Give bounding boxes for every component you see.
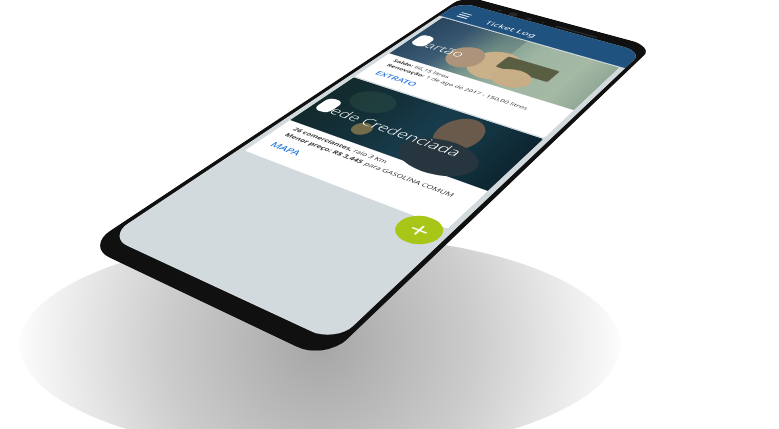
button[interactable]: EXTRATO [373, 69, 421, 88]
staticText: Ticket Log [482, 19, 540, 39]
staticText: Saldo: [391, 58, 418, 69]
staticText: Rede Credenciada [315, 101, 467, 160]
button[interactable]: Add [386, 211, 452, 250]
staticText: 66,15 litros [412, 65, 452, 79]
button[interactable]: Cartão [355, 17, 620, 138]
staticText: 1 de ago de 2017 - 150,00 litros [423, 75, 531, 111]
staticText: EXTRATO [373, 69, 421, 88]
button[interactable]: Rede Credenciada [244, 77, 543, 229]
staticText: Menor preço: R$ 3,445 [282, 131, 369, 166]
button[interactable]: Menu [449, 9, 479, 22]
staticText: raio 3 Km [351, 148, 390, 165]
staticText: MAPA [267, 140, 305, 157]
staticText: para GASOLINA COMUM [361, 160, 457, 199]
staticText: Renovação: [384, 62, 429, 79]
staticText: Cartão [412, 37, 470, 60]
staticText: 26 comerciantes, [290, 126, 358, 153]
button[interactable]: MAPA [267, 140, 305, 157]
